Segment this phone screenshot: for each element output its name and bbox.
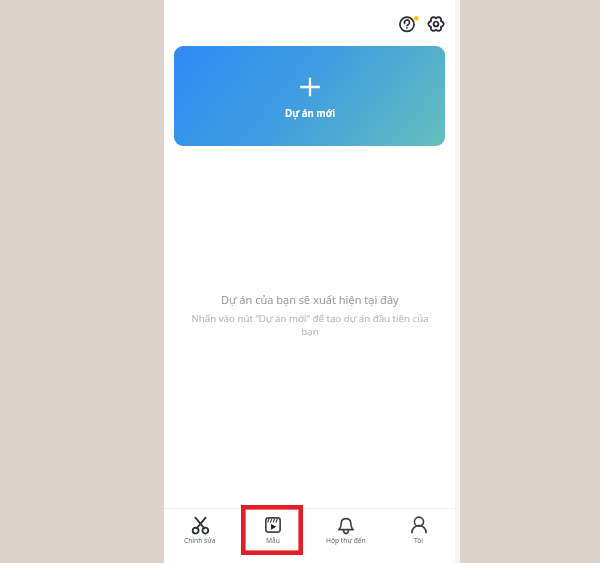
button[interactable]: Dự án mới [174,46,445,146]
button[interactable]: Settings [422,10,450,38]
staticText: Nhấn vào nút “Dự án mới” để tạo dự án đầ… [185,312,435,338]
button[interactable]: Tôi [382,509,455,563]
staticText: Tôi [414,536,424,545]
staticText: Dự án của bạn sẽ xuất hiện tại đây [221,292,399,307]
staticText: Hộp thư đến [326,536,366,545]
button[interactable]: Chỉnh sửa [164,509,236,563]
staticText: Mẫu [266,536,280,545]
staticText: Chỉnh sửa [184,536,216,545]
button[interactable]: Hộp thư đến [309,509,382,563]
staticText: Dự án mới [285,107,335,120]
button[interactable]: Help [393,10,421,38]
button[interactable]: Mẫu [236,509,309,563]
